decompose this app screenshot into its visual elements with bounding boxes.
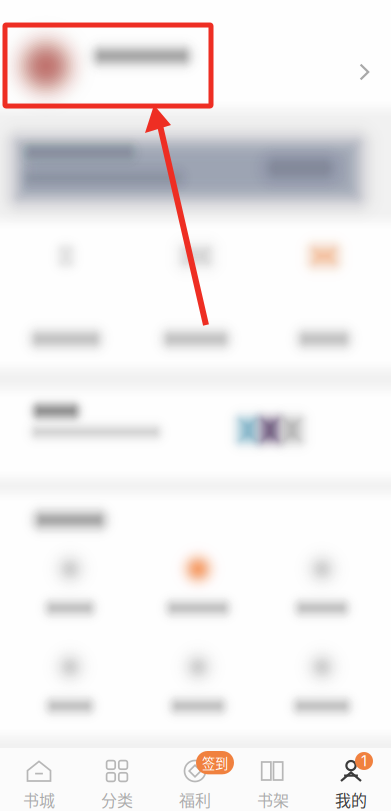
button[interactable]	[0, 0, 391, 811]
staticText: 书城	[23, 788, 55, 811]
button[interactable]: 书城	[0, 748, 78, 811]
staticText: 分类	[101, 788, 133, 811]
button[interactable]: 福利	[156, 748, 234, 811]
button[interactable]: 我的	[312, 748, 390, 811]
staticText: 1	[361, 752, 367, 770]
button[interactable]	[0, 0, 391, 811]
staticText: 书架	[257, 788, 289, 811]
button[interactable]	[0, 0, 391, 811]
button[interactable]	[0, 0, 391, 811]
button[interactable]: 分类	[78, 748, 156, 811]
button[interactable]: 签到	[196, 751, 234, 774]
button[interactable]	[0, 0, 391, 811]
button[interactable]	[0, 0, 391, 811]
button[interactable]	[0, 0, 391, 108]
staticText: 福利	[179, 788, 211, 811]
button[interactable]	[0, 0, 391, 811]
staticText: 签到	[202, 753, 228, 772]
button[interactable]	[0, 0, 391, 811]
button[interactable]	[0, 0, 391, 811]
button[interactable]	[0, 0, 391, 811]
button[interactable]: 书架	[234, 748, 312, 811]
button[interactable]	[0, 0, 391, 811]
staticText: 我的	[335, 788, 367, 811]
button[interactable]: 1 notification	[355, 752, 373, 770]
